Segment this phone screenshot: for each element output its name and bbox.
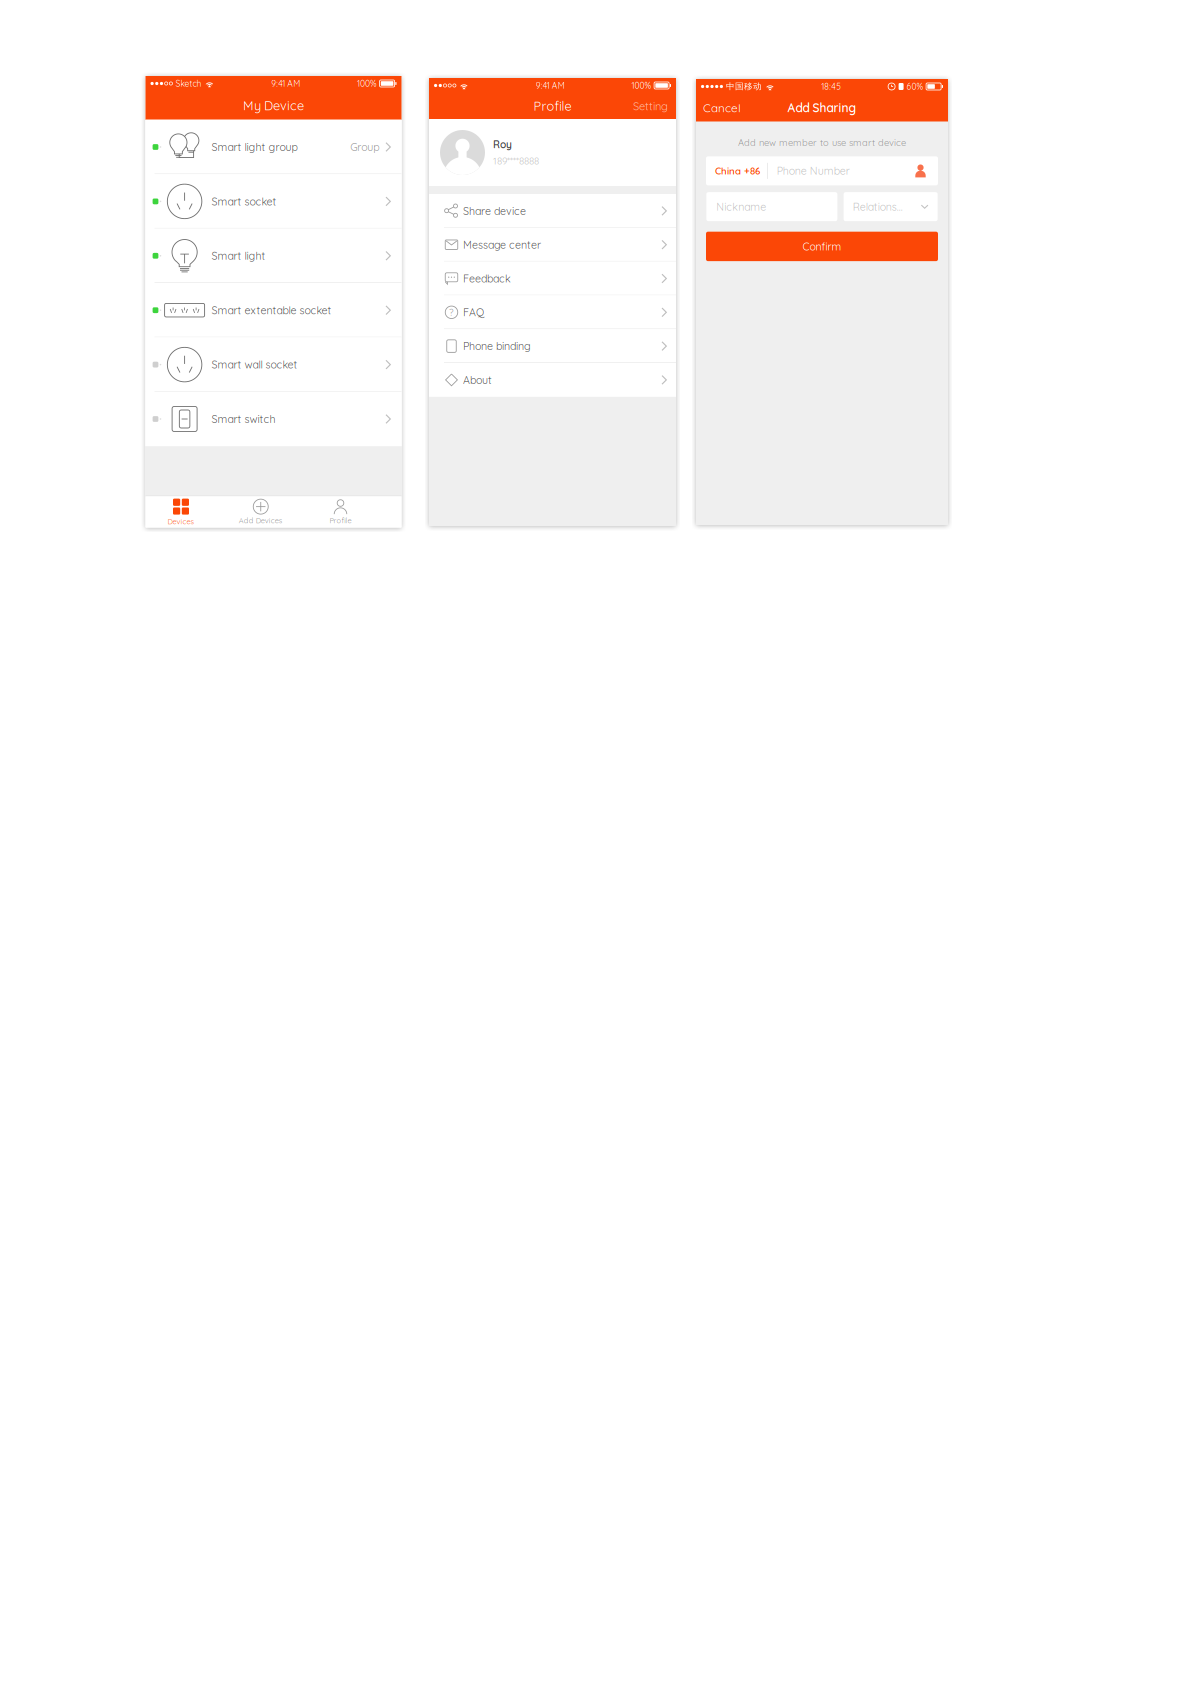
button[interactable]: Setting xyxy=(633,95,676,117)
staticText: Add Sharing xyxy=(787,100,856,115)
staticText: Cancel xyxy=(703,100,741,115)
staticText: Smart switch xyxy=(212,412,276,426)
staticText: Add new member to use smart device xyxy=(738,137,906,148)
staticText: Feedback xyxy=(463,272,511,285)
staticText: Devices xyxy=(167,517,194,526)
button[interactable]: Smart switch xyxy=(145,392,401,446)
staticText: Roy xyxy=(493,138,512,151)
staticText: About xyxy=(463,373,492,386)
button[interactable]: Feedback xyxy=(429,262,676,295)
staticText: Add Devices xyxy=(239,516,283,525)
button[interactable]: Add Devices xyxy=(229,498,293,526)
staticText: ? xyxy=(449,306,454,318)
button[interactable]: Smart socket xyxy=(145,174,401,229)
button[interactable]: Smart light xyxy=(145,229,401,283)
staticText: Nickname xyxy=(716,200,766,213)
button[interactable]: Relations... xyxy=(844,192,938,221)
button[interactable]: Phone binding xyxy=(429,329,676,363)
staticText: China +86 xyxy=(715,165,760,177)
staticText: Message center xyxy=(463,238,541,251)
staticText: My Device xyxy=(243,97,304,113)
button[interactable]: Roy xyxy=(429,119,676,186)
staticText: 9:41 AM xyxy=(271,78,300,89)
button[interactable]: Smart extentable socket xyxy=(145,283,401,337)
staticText: 中国移动 xyxy=(726,81,762,92)
staticText: Phone Number xyxy=(777,164,850,177)
staticText: Sketch xyxy=(175,78,201,89)
staticText: 18:45 xyxy=(821,81,841,92)
staticText: 100% xyxy=(632,80,652,91)
button[interactable]: Cancel xyxy=(696,96,741,119)
staticText: 9:41 AM xyxy=(536,80,565,91)
staticText: Profile xyxy=(329,516,351,525)
button[interactable]: Share device xyxy=(429,194,676,228)
staticText: Profile xyxy=(533,98,571,114)
button[interactable]: About xyxy=(429,363,676,397)
staticText: Group xyxy=(350,140,379,154)
staticText: Relations... xyxy=(853,200,903,213)
button[interactable]: Message center xyxy=(429,228,676,262)
staticText: 189****8888 xyxy=(493,155,539,167)
staticText: Share device xyxy=(463,204,526,217)
button[interactable]: ? xyxy=(429,295,676,329)
button[interactable]: Devices xyxy=(149,498,213,526)
staticText: Confirm xyxy=(802,240,841,253)
staticText: Smart extentable socket xyxy=(212,303,332,317)
staticText: 100% xyxy=(357,78,377,89)
staticText: Smart light group xyxy=(212,140,298,154)
staticText: Phone binding xyxy=(463,339,531,353)
button[interactable]: Smart light group xyxy=(145,120,401,174)
staticText: 60% xyxy=(907,81,924,92)
button[interactable]: Profile xyxy=(308,498,372,526)
staticText: Setting xyxy=(633,99,668,113)
staticText: Smart socket xyxy=(212,195,277,208)
button[interactable]: Confirm xyxy=(706,232,938,261)
staticText: Smart wall socket xyxy=(212,358,298,371)
button[interactable]: Smart wall socket xyxy=(145,337,401,392)
staticText: Smart light xyxy=(212,249,266,262)
staticText: FAQ xyxy=(463,306,484,319)
